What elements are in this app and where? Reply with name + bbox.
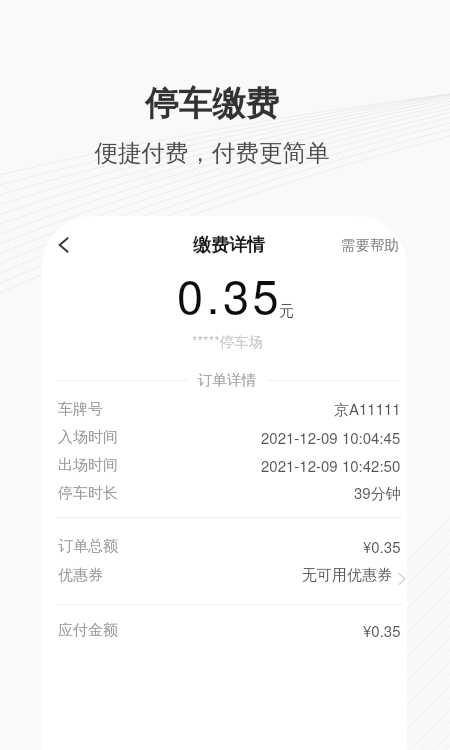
staticText: 39分钟 bbox=[354, 482, 401, 504]
button[interactable]: 订单总额 bbox=[42, 532, 407, 560]
staticText: 出场时间 bbox=[58, 456, 118, 475]
button[interactable]: 停车时长 bbox=[42, 479, 407, 507]
button[interactable]: 车牌号 bbox=[42, 395, 407, 423]
button[interactable]: 应付金额 bbox=[42, 616, 407, 644]
staticText: 需要帮助 bbox=[341, 236, 399, 254]
staticText: 停车时长 bbox=[58, 484, 118, 503]
button[interactable]: 优惠券 bbox=[42, 561, 407, 589]
button[interactable]: 入场时间 bbox=[42, 423, 407, 451]
staticText: ¥0.35 bbox=[363, 536, 401, 557]
staticText: 停车缴费 bbox=[0, 83, 437, 125]
staticText: 2021-12-09 10:04:45 bbox=[261, 427, 401, 448]
staticText: *****停车场 bbox=[192, 331, 263, 352]
staticText: ¥0.35 bbox=[363, 620, 401, 641]
staticText: 车牌号 bbox=[58, 400, 103, 419]
staticText: 元 bbox=[279, 302, 294, 321]
staticText: 无可用优惠券 bbox=[302, 566, 392, 585]
button[interactable]: 返回 bbox=[46, 227, 82, 263]
staticText: 优惠券 bbox=[58, 566, 103, 585]
staticText: 2021-12-09 10:42:50 bbox=[261, 455, 401, 476]
staticText: 0.35 bbox=[177, 260, 283, 327]
staticText: 京A11111 bbox=[334, 398, 401, 420]
staticText: 订单详情 bbox=[198, 371, 256, 389]
button[interactable]: 需要帮助 bbox=[341, 236, 407, 254]
staticText: 订单总额 bbox=[58, 537, 118, 556]
staticText: 缴费详情 bbox=[193, 234, 265, 257]
staticText: 入场时间 bbox=[58, 428, 118, 447]
staticText: 应付金额 bbox=[58, 621, 118, 640]
staticText: 便捷付费，付费更简单 bbox=[0, 138, 437, 168]
button[interactable]: 出场时间 bbox=[42, 451, 407, 479]
